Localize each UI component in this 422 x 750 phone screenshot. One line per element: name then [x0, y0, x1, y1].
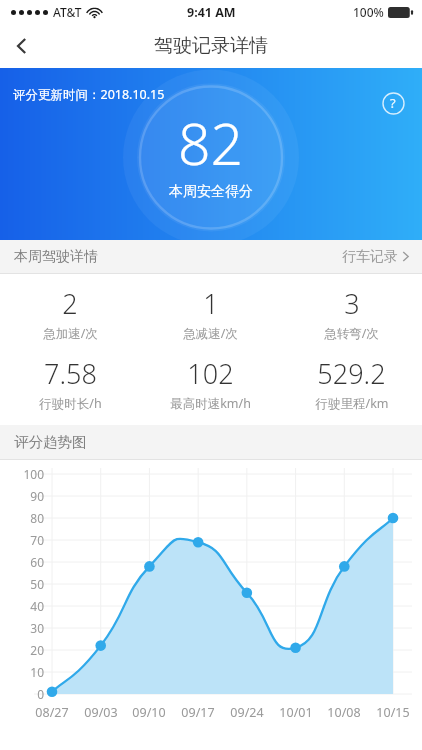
staticText: 08/27 — [27, 704, 77, 721]
staticText: 3 — [344, 285, 360, 322]
staticText: 100% — [353, 4, 384, 20]
staticText: 10 — [2, 664, 44, 680]
button[interactable]: 1 — [140, 285, 281, 342]
staticText: 行驶里程/km — [315, 395, 389, 412]
staticText: 本周驾驶详情 — [14, 248, 98, 266]
button[interactable]: 2 — [0, 285, 140, 342]
button[interactable]: Help — [378, 88, 408, 118]
staticText: 2 — [62, 285, 78, 322]
staticText: 10/08 — [319, 704, 369, 721]
staticText: 1 — [203, 285, 219, 322]
staticText: 0 — [2, 686, 44, 702]
staticText: 529.2 — [317, 355, 386, 392]
staticText: 09/24 — [222, 704, 272, 721]
staticText: 本周安全得分 — [169, 183, 253, 201]
staticText: 评分更新时间：2018.10.15 — [13, 86, 165, 103]
staticText: 急加速/次 — [43, 325, 98, 342]
staticText: 10/15 — [368, 704, 418, 721]
staticText: 急转弯/次 — [324, 325, 379, 342]
button[interactable]: Back — [0, 24, 44, 68]
staticText: 40 — [2, 598, 44, 614]
staticText: ? — [390, 94, 396, 112]
staticText: 82 — [178, 104, 244, 182]
button[interactable]: 行车记录 — [332, 240, 422, 273]
staticText: 急减速/次 — [183, 325, 238, 342]
staticText: 50 — [2, 576, 44, 592]
staticText: 09/17 — [173, 704, 223, 721]
staticText: 102 — [187, 355, 234, 392]
staticText: 最高时速km/h — [170, 395, 251, 412]
staticText: AT&T — [53, 4, 82, 20]
staticText: 70 — [2, 532, 44, 548]
staticText: 9:41 AM — [187, 4, 236, 21]
staticText: 7.58 — [44, 355, 97, 392]
button[interactable]: 3 — [281, 285, 422, 342]
staticText: 行驶时长/h — [39, 395, 102, 412]
staticText: 10/01 — [271, 704, 321, 721]
staticText: 100 — [2, 466, 44, 482]
button[interactable]: 102 — [140, 355, 281, 412]
staticText: 行车记录 — [342, 248, 398, 266]
staticText: 80 — [2, 510, 44, 526]
staticText: 驾驶记录详情 — [154, 34, 268, 58]
staticText: 30 — [2, 620, 44, 636]
staticText: 09/03 — [76, 704, 126, 721]
staticText: 60 — [2, 554, 44, 570]
button[interactable]: 529.2 — [281, 355, 422, 412]
staticText: 评分趋势图 — [14, 433, 87, 451]
staticText: 20 — [2, 642, 44, 658]
staticText: 09/10 — [124, 704, 174, 721]
button[interactable]: 7.58 — [0, 355, 140, 412]
staticText: 90 — [2, 488, 44, 504]
